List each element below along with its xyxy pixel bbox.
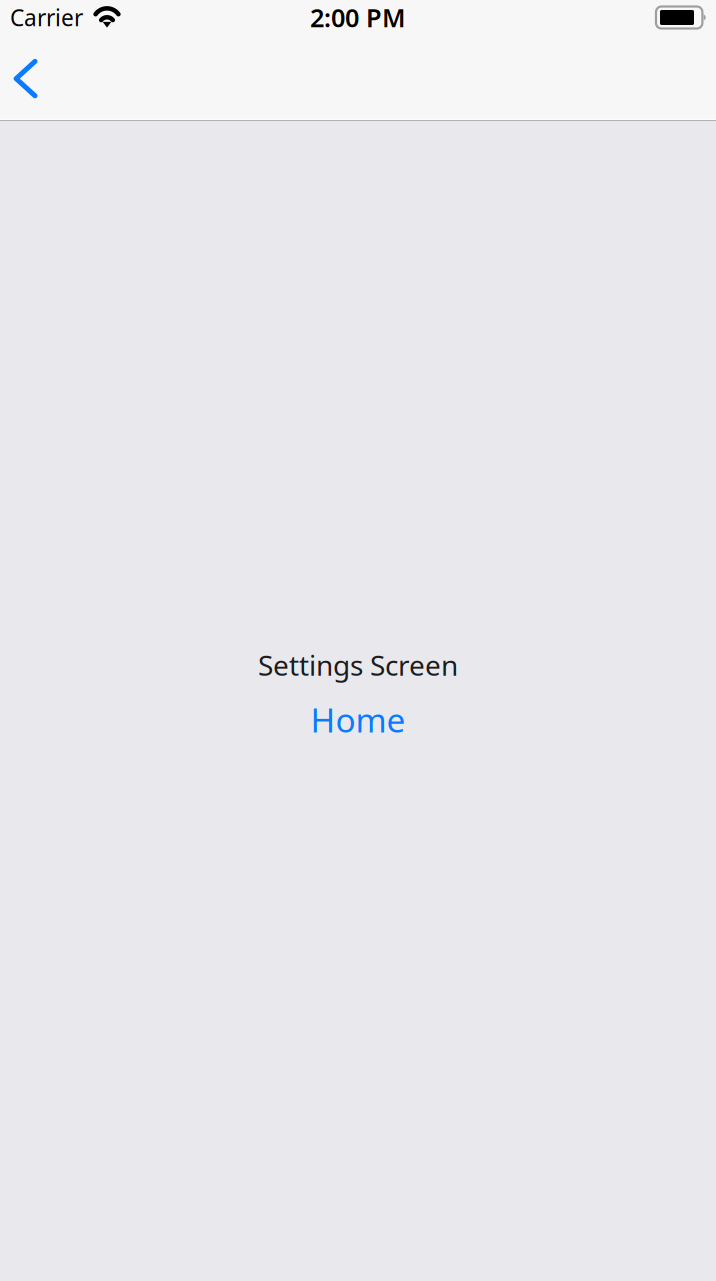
- button[interactable]: Back: [0, 39, 52, 119]
- button[interactable]: Home: [310, 697, 405, 742]
- staticText: Settings Screen: [258, 646, 458, 683]
- staticText: Home: [310, 697, 405, 742]
- staticText: Carrier: [10, 2, 83, 32]
- staticText: 2:00 PM: [310, 1, 406, 34]
